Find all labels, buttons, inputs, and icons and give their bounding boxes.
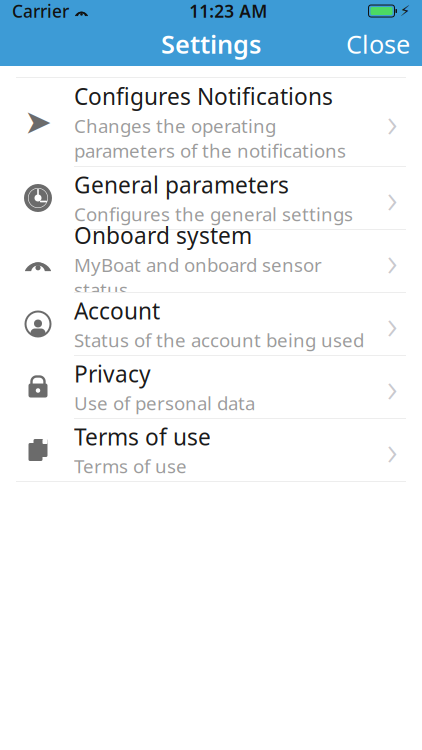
staticText: Onboard system — [74, 220, 252, 250]
staticText: › — [387, 360, 398, 413]
staticText: 11:23 AM — [189, 0, 267, 22]
staticText: ⚡︎ — [400, 3, 410, 19]
staticText: Terms of use — [74, 454, 187, 478]
button[interactable]: Terms of use — [0, 419, 422, 481]
button[interactable]: General parameters — [0, 167, 422, 229]
staticText: › — [387, 171, 398, 224]
staticText: Configures the general settings — [74, 202, 353, 226]
staticText: Configures Notifications — [74, 81, 333, 111]
staticText: › — [387, 423, 398, 476]
staticText: › — [387, 234, 398, 287]
staticText: Settings — [161, 27, 261, 61]
button[interactable]: Close — [334, 19, 422, 69]
button[interactable]: Privacy — [0, 356, 422, 418]
staticText: Privacy — [74, 359, 151, 389]
button[interactable]: Account — [0, 293, 422, 355]
staticText: Changes the operating parameters of the … — [74, 113, 346, 163]
staticText: MyBoat and onboard sensor status — [74, 252, 322, 302]
staticText: Close — [346, 27, 410, 61]
staticText: › — [387, 95, 398, 148]
staticText: › — [387, 297, 398, 350]
staticText: Terms of use — [74, 422, 211, 452]
button[interactable]: Onboard system — [0, 230, 422, 292]
staticText: General parameters — [74, 170, 289, 200]
button[interactable]: ➤ — [0, 78, 422, 166]
staticText: Carrier — [12, 0, 69, 22]
staticText: Status of the account being used — [74, 328, 364, 352]
staticText: Account — [74, 296, 160, 326]
staticText: ➤ — [24, 103, 52, 141]
staticText: Use of personal data — [74, 391, 255, 415]
